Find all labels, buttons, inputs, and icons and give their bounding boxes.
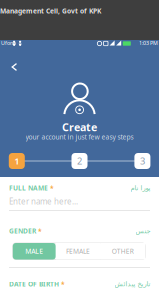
staticText: تاریخ پیدائش (114, 280, 150, 288)
staticText: GENDER (9, 227, 36, 235)
staticText: 3 (140, 155, 145, 167)
staticText: OTHER (112, 247, 134, 256)
staticText: 1:03 PM (139, 39, 158, 47)
staticText: 2 (77, 155, 82, 167)
staticText: Ufone (1, 39, 16, 47)
button[interactable]: FEMALE (56, 243, 100, 259)
button[interactable]: OTHER (100, 243, 145, 259)
staticText: MALE (25, 247, 43, 256)
staticText: * (48, 184, 54, 192)
staticText: Create (62, 120, 97, 134)
staticText: your account in just few easy steps (25, 133, 133, 141)
staticText: DATE OF BIRTH (9, 280, 59, 288)
staticText: FULL NAME (9, 184, 48, 192)
staticText: Management Cell, Govt of KPK (0, 7, 101, 15)
button[interactable]: Back (5, 58, 23, 76)
staticText: Enter name here... (9, 196, 78, 207)
button[interactable]: MALE (13, 243, 56, 259)
staticText: پورا نام (130, 184, 150, 192)
staticText: FEMALE (66, 247, 90, 256)
staticText: 1 (14, 155, 19, 167)
staticText: * (36, 227, 42, 235)
staticText: * (59, 280, 65, 288)
staticText: جنس (135, 227, 150, 235)
